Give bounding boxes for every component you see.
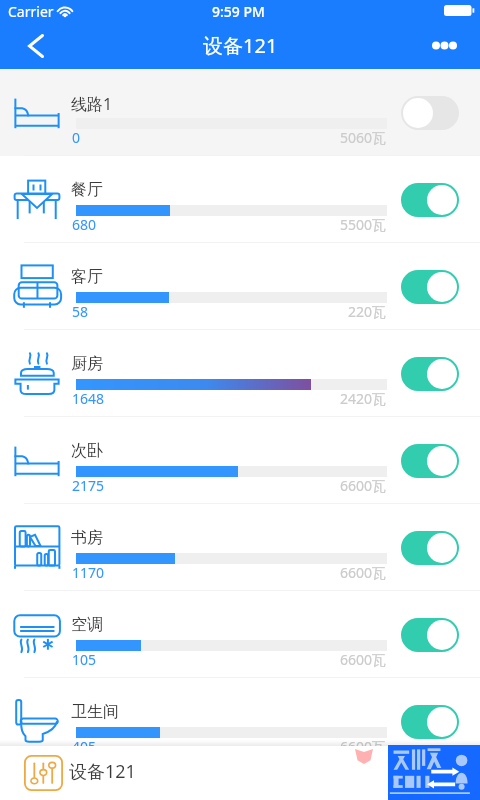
button[interactable]: More options: [418, 22, 480, 69]
staticText: 405: [72, 737, 97, 756]
staticText: 58: [72, 302, 89, 321]
button[interactable]: Back: [8, 22, 62, 69]
button[interactable]: 次卧: [0, 417, 480, 504]
staticText: 6600瓦: [340, 563, 387, 582]
button[interactable]: Switch on: [401, 183, 459, 217]
staticText: 105: [72, 650, 97, 669]
button[interactable]: 线路1: [0, 69, 480, 156]
staticText: Carrier: [8, 2, 54, 21]
button[interactable]: 客厅: [0, 243, 480, 330]
staticText: 1648: [72, 389, 105, 408]
staticText: 680: [72, 215, 97, 234]
staticText: 餐厅: [71, 180, 103, 200]
button[interactable]: Switch on: [401, 531, 459, 565]
button[interactable]: Switch on: [401, 618, 459, 652]
staticText: 220瓦: [348, 302, 387, 321]
button[interactable]: Switch on: [401, 270, 459, 304]
button[interactable]: 书房: [0, 504, 480, 591]
staticText: 5500瓦: [340, 215, 387, 234]
button[interactable]: Switch on: [401, 357, 459, 391]
staticText: 6600瓦: [340, 737, 387, 756]
staticText: 设备121: [203, 32, 278, 59]
staticText: 2175: [72, 476, 105, 495]
staticText: 1170: [72, 563, 105, 582]
staticText: 次卧: [71, 441, 103, 461]
staticText: 客厅: [71, 267, 103, 287]
staticText: 6600瓦: [340, 650, 387, 669]
button[interactable]: Switch on: [401, 705, 459, 739]
staticText: 空调: [71, 615, 103, 635]
button[interactable]: Switch off: [401, 96, 459, 130]
staticText: 线路1: [71, 93, 113, 115]
staticText: 卫生间: [71, 702, 119, 722]
button[interactable]: 设备121: [0, 746, 480, 800]
button[interactable]: 餐厅: [0, 156, 480, 243]
staticText: 厨房: [71, 354, 103, 374]
button[interactable]: Switch on: [401, 444, 459, 478]
button[interactable]: 厨房: [0, 330, 480, 417]
staticText: 5060瓦: [340, 128, 387, 147]
staticText: 6600瓦: [340, 476, 387, 495]
button[interactable]: 空调: [0, 591, 480, 678]
staticText: 书房: [71, 528, 103, 548]
staticText: 2420瓦: [340, 389, 387, 408]
staticText: 0: [72, 128, 81, 147]
staticText: 9:59 PM: [212, 2, 265, 21]
staticText: 设备121: [69, 759, 136, 784]
button[interactable]: 卫生间: [0, 678, 480, 765]
